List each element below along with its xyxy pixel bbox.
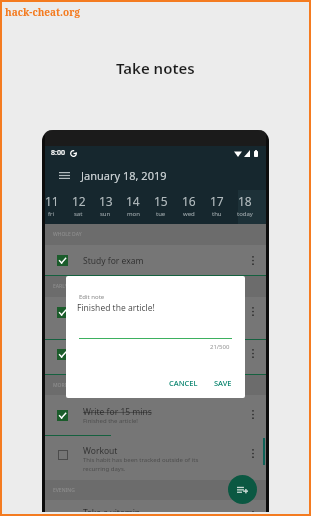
staticText: 16 — [182, 193, 196, 209]
staticText: 15 — [154, 193, 168, 209]
staticText: SAVE — [214, 378, 232, 388]
button[interactable]: 14 — [119, 190, 147, 224]
button[interactable]: 17 — [203, 190, 231, 224]
button[interactable]: Take a vitamin — [45, 500, 266, 512]
staticText: 18 — [238, 193, 252, 209]
button[interactable]: Write for 15 mins — [45, 395, 266, 436]
button[interactable]: 11 — [42, 190, 65, 224]
button[interactable]: 13 — [92, 190, 119, 224]
button[interactable]: 18 — [231, 190, 259, 224]
button[interactable]: More options — [244, 509, 262, 512]
staticText: Finished the article! — [77, 302, 155, 314]
staticText: EARLY — [53, 283, 68, 290]
button[interactable]: Add habit — [228, 475, 257, 504]
staticText: mon — [127, 210, 140, 218]
staticText: fri — [48, 210, 55, 218]
staticText: Study for exam — [83, 255, 144, 267]
staticText: Take notes — [116, 58, 195, 78]
button[interactable]: Workout — [45, 436, 266, 480]
button[interactable]: Study for exam — [45, 245, 266, 276]
staticText: This habit has been tracked outside of i… — [83, 456, 199, 473]
button[interactable]: CANCEL — [164, 375, 203, 391]
staticText: 13 — [99, 193, 113, 209]
staticText: sat — [74, 210, 83, 218]
staticText: Take a vitamin — [83, 507, 141, 512]
button[interactable]: More options — [244, 447, 262, 459]
staticText: MORNING — [53, 382, 78, 389]
button[interactable]: Open navigation menu — [55, 166, 73, 184]
staticText: Finished the article! — [83, 417, 138, 425]
button[interactable]: More options — [244, 408, 262, 420]
button[interactable]: Read a book — [45, 340, 266, 375]
button[interactable]: SAVE — [209, 375, 237, 391]
staticText: today — [237, 210, 253, 218]
staticText: wed — [183, 210, 195, 218]
staticText: 21/500 — [210, 343, 230, 351]
staticText: 14 — [126, 193, 140, 209]
staticText: 11 — [45, 193, 59, 209]
staticText: 12 — [72, 193, 86, 209]
button[interactable]: Meditate — [45, 297, 266, 340]
staticText: sun — [100, 210, 111, 218]
button[interactable]: 12 — [65, 190, 92, 224]
staticText: CANCEL — [169, 378, 198, 388]
staticText: Write for 15 mins — [83, 406, 152, 418]
staticText: EVENING — [53, 487, 75, 494]
staticText: January 18, 2019 — [81, 168, 167, 183]
staticText: WHOLE DAY — [53, 231, 82, 238]
button[interactable]: 16 — [175, 190, 203, 224]
staticText: Workout — [83, 445, 118, 457]
staticText: tue — [156, 210, 166, 218]
staticText: hack-cheat.org — [5, 5, 81, 19]
button[interactable]: More options — [244, 305, 262, 317]
staticText: 17 — [210, 193, 224, 209]
button[interactable]: More options — [244, 245, 262, 276]
button[interactable]: More options — [244, 347, 262, 359]
staticText: 8:00 — [51, 148, 65, 158]
staticText: thu — [212, 210, 222, 218]
staticText: Edit note — [79, 293, 105, 301]
staticText: Meditate — [83, 303, 119, 315]
button[interactable]: 15 — [147, 190, 175, 224]
